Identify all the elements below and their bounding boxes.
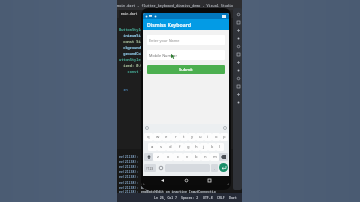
staticText: ButtonStyle [119,27,143,33]
staticText: l [219,144,221,150]
staticText: ?123 [146,166,154,171]
staticText: f [179,144,181,150]
button[interactable]: Rotate left [235,43,241,49]
staticText: z [157,154,159,160]
button[interactable]: b [192,153,201,161]
staticText: i [207,134,209,140]
staticText: Mobile Number [149,53,177,58]
staticText: j [203,144,205,150]
button[interactable]: Emoji [157,164,164,171]
staticText: e [165,134,168,140]
button[interactable]: r [171,133,180,141]
staticText: main.dart [121,12,138,16]
button[interactable]: s [157,143,166,151]
button[interactable]: h [192,143,200,151]
staticText: er(21138): [119,160,139,164]
button[interactable]: Home [182,176,191,185]
button[interactable]: g [184,143,192,151]
button[interactable]: Back [158,176,167,185]
button[interactable]: Volume down [235,35,241,41]
staticText: er(21138): [119,170,139,174]
staticText: Ln 26, Col 7 [154,196,177,200]
button[interactable]: c [173,153,183,161]
staticText: Dart [229,196,237,200]
staticText: getFocusAfterCursor on inactive InputCon [141,181,218,185]
staticText: n [204,154,207,160]
button[interactable]: k [208,143,216,151]
button[interactable]: Screenshot [235,59,241,65]
button[interactable]: v [183,153,192,161]
button[interactable]: a [148,143,157,151]
button[interactable]: Close [235,11,241,17]
button[interactable]: Mobile Number [147,50,225,60]
staticText: uttonStyle( [119,57,143,63]
button[interactable]: l [216,143,224,151]
staticText: main.dart - flutter_keyboard_dismiss_dem… [117,3,242,8]
button[interactable]: q [144,133,153,141]
button[interactable]: Back [235,75,241,81]
button[interactable]: o [212,133,220,141]
staticText: Enter your Name [149,38,180,43]
staticText: endBatchEdit on inactive InputConnectio [141,190,216,193]
staticText: k [211,144,214,150]
staticText: a [151,144,154,150]
button[interactable]: Zoom [235,67,241,73]
staticText: CRLF [217,196,225,200]
button[interactable]: More [235,99,241,105]
button[interactable]: t [180,133,188,141]
button[interactable]: d [166,143,175,151]
button[interactable]: Enter [219,163,228,172]
staticText: w [156,134,160,140]
staticText: er(21138): [119,190,141,193]
button[interactable]: i [204,133,212,141]
button[interactable]: Submit [147,65,225,74]
staticText: ized: 0.0, [119,63,145,69]
staticText: UTF-8 [203,196,213,200]
button[interactable]: Volume up [235,27,241,33]
staticText: m [213,154,217,160]
staticText: g [187,144,190,150]
staticText: o [215,134,218,140]
button[interactable]: Shift [144,153,153,161]
staticText: x [167,154,170,160]
button[interactable]: Backspace [219,153,228,161]
staticText: er(21138): [119,181,141,185]
button[interactable]: e [162,133,171,141]
button[interactable]: p [220,133,228,141]
button[interactable]: z [153,153,163,161]
button[interactable]: Power [235,19,241,25]
button[interactable]: u [196,133,204,141]
staticText: q [147,134,150,140]
button[interactable]: Recent apps [205,176,214,185]
button[interactable]: x [163,153,173,161]
staticText: const Text [119,69,150,75]
staticText: ckgroundCo [119,45,145,51]
staticText: er(21138): [119,155,139,159]
button[interactable]: n [201,153,210,161]
staticText: y [191,134,194,140]
button[interactable]: Enter your Name [147,35,225,45]
button[interactable]: Overview [235,91,241,97]
staticText: groundColo [119,51,145,57]
staticText: s [160,144,163,150]
staticText: inimumSize: [119,33,148,39]
button[interactable]: Rotate right [235,51,241,57]
staticText: u [199,134,202,140]
button[interactable]: m [210,153,219,161]
button[interactable]: j [200,143,208,151]
staticText: const Size(d [119,39,150,45]
button[interactable]: ?123 [144,164,156,172]
button[interactable]: f [175,143,184,151]
staticText: t [183,134,185,140]
staticText: p [223,134,226,140]
button[interactable]: w [153,133,162,141]
staticText: rn [119,87,128,93]
staticText: . [214,166,215,171]
button[interactable]: Home [235,83,241,89]
staticText: Dismiss Keyboard [147,21,191,28]
button[interactable]: y [188,133,196,141]
staticText: b [195,154,198,160]
staticText: beginBatchEdit on inactive InputConnect [141,186,216,190]
